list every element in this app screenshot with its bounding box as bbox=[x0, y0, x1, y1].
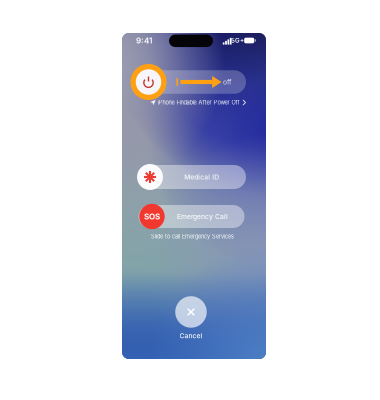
staticText: off bbox=[223, 78, 231, 86]
staticText: Slide to call Emergency Services bbox=[151, 233, 234, 240]
button[interactable]: Cancel bbox=[168, 295, 214, 341]
staticText: Medical ID bbox=[184, 173, 219, 181]
button[interactable]: Emergency Call bbox=[122, 202, 266, 230]
button[interactable]: iPhone Findable After Power Off bbox=[150, 97, 246, 108]
staticText: 5G+ bbox=[231, 37, 244, 44]
staticText: 9:41 bbox=[136, 36, 152, 45]
staticText: Cancel bbox=[179, 332, 202, 340]
staticText: iPhone Findable After Power Off bbox=[158, 99, 240, 106]
button[interactable]: Slide to power off bbox=[122, 63, 261, 100]
staticText: Emergency Call bbox=[177, 212, 228, 221]
staticText: SOS bbox=[144, 212, 160, 221]
button[interactable]: Medical ID bbox=[122, 163, 266, 191]
